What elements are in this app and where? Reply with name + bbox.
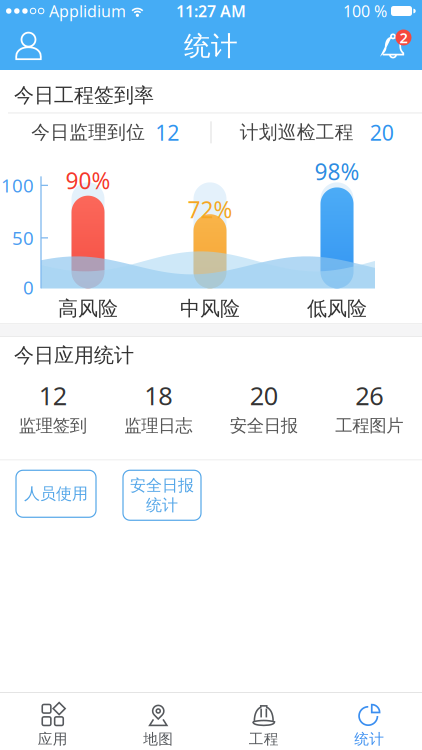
- staticText: 工程图片: [335, 415, 403, 436]
- staticText: 20: [250, 378, 278, 412]
- staticText: 50: [12, 225, 34, 250]
- staticText: 今日监理到位: [31, 121, 145, 144]
- staticText: 0: [23, 275, 34, 300]
- staticText: 26: [355, 378, 383, 412]
- staticText: 90%: [65, 165, 110, 195]
- staticText: 11:27 AM: [176, 0, 246, 22]
- staticText: 72%: [187, 194, 232, 224]
- staticText: 监理签到: [19, 415, 87, 436]
- staticText: 12: [39, 378, 67, 412]
- staticText: 安全日报: [230, 415, 298, 436]
- staticText: 统计: [354, 730, 384, 748]
- staticText: 100: [1, 173, 34, 198]
- staticText: 地图: [143, 730, 173, 748]
- staticText: 人员使用: [24, 484, 88, 504]
- staticText: Applidium: [49, 0, 126, 22]
- staticText: 中风险: [180, 296, 240, 321]
- staticText: 统计: [146, 495, 178, 515]
- staticText: 计划巡检工程: [240, 121, 354, 144]
- staticText: 低风险: [307, 296, 367, 321]
- staticText: 12: [155, 118, 179, 146]
- staticText: 98%: [314, 156, 359, 186]
- staticText: 监理日志: [124, 415, 192, 436]
- staticText: 2: [399, 28, 407, 47]
- staticText: 100 %: [343, 0, 387, 22]
- staticText: 工程: [249, 730, 279, 748]
- staticText: 统计: [184, 30, 238, 62]
- staticText: 安全日报: [130, 476, 194, 495]
- staticText: 20: [370, 118, 394, 146]
- staticText: 今日应用统计: [14, 343, 134, 368]
- staticText: 应用: [38, 730, 68, 748]
- staticText: 今日工程签到率: [14, 83, 154, 108]
- staticText: 18: [144, 378, 172, 412]
- staticText: 高风险: [58, 296, 118, 321]
